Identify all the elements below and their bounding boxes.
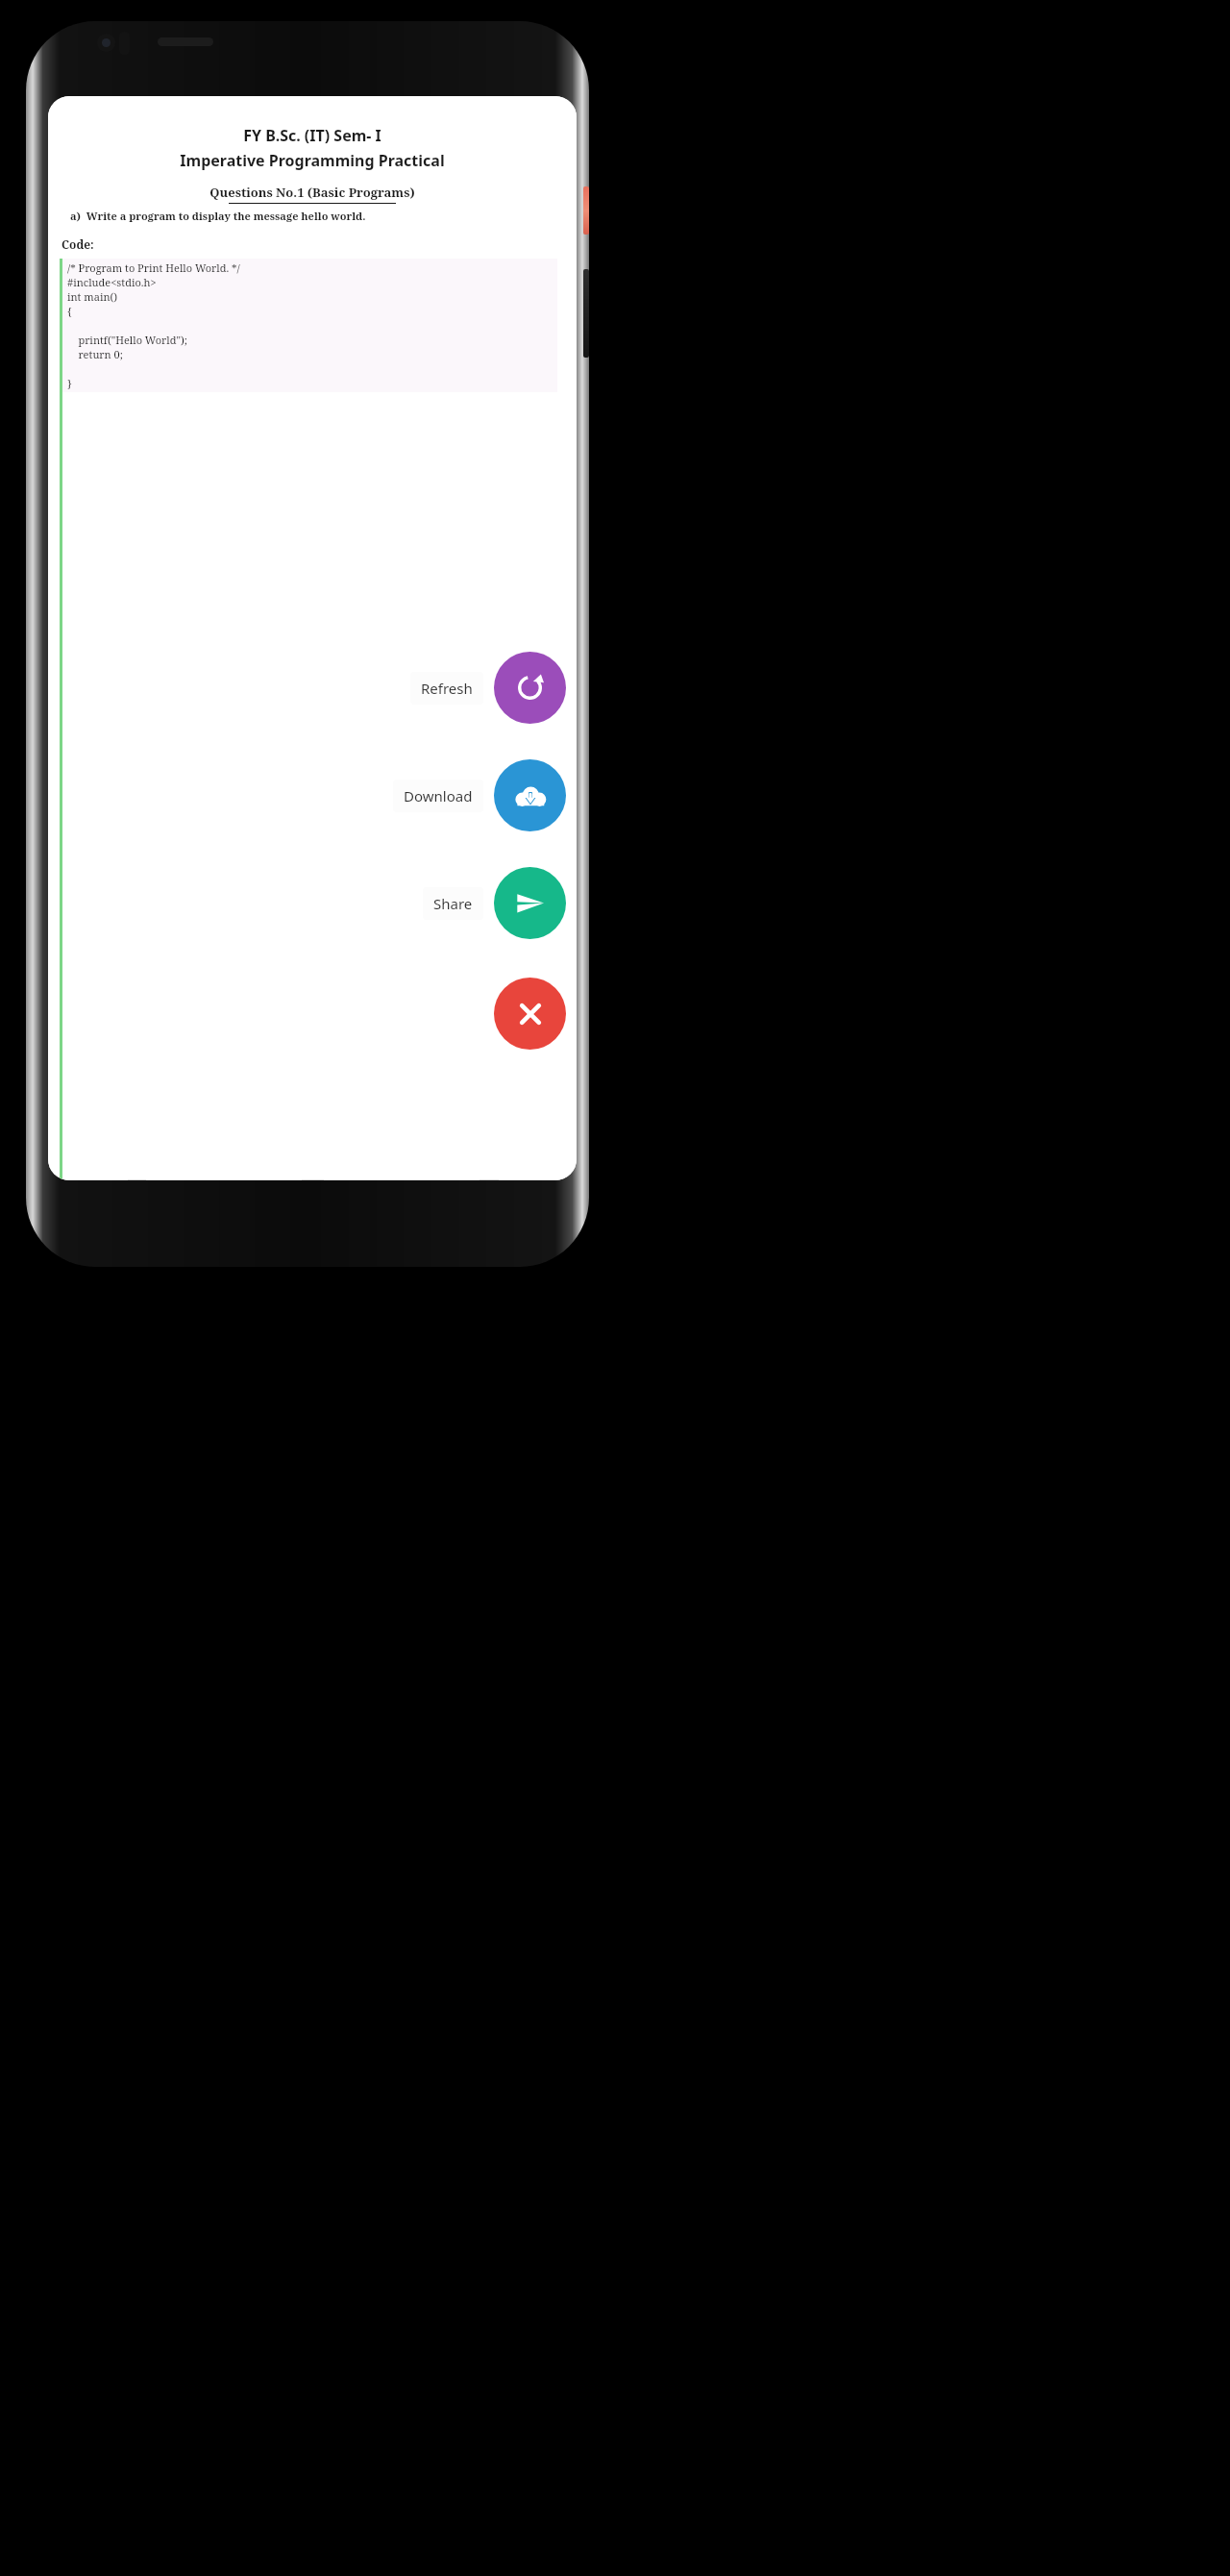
staticText: } [67,376,72,390]
staticText: Imperative Programming Practical [48,150,577,171]
staticText: #include<stdio.h> [67,275,157,289]
staticText: Share [433,894,473,913]
staticText: Download [404,786,473,805]
staticText: FY B.Sc. (IT) Sem- I [48,125,577,146]
button[interactable]: Refresh [494,652,566,724]
button[interactable]: Refresh [410,672,483,705]
staticText: /* Program to Print Hello World. */ [67,260,240,275]
button[interactable]: Close [494,978,566,1050]
staticText: Refresh [421,679,473,698]
button[interactable]: Share [494,867,566,939]
staticText: return 0; [67,347,123,361]
button[interactable]: Share [423,887,483,920]
staticText: { [67,304,72,318]
staticText: int main() [67,289,118,304]
staticText: printf("Hello World"); [67,333,187,347]
button[interactable]: Download [393,780,483,812]
button[interactable]: Download [494,759,566,831]
staticText: Questions No.1 (Basic Programs) [48,184,577,201]
staticText: Code: [61,236,94,252]
staticText: a) Write a program to display the messag… [70,209,366,223]
